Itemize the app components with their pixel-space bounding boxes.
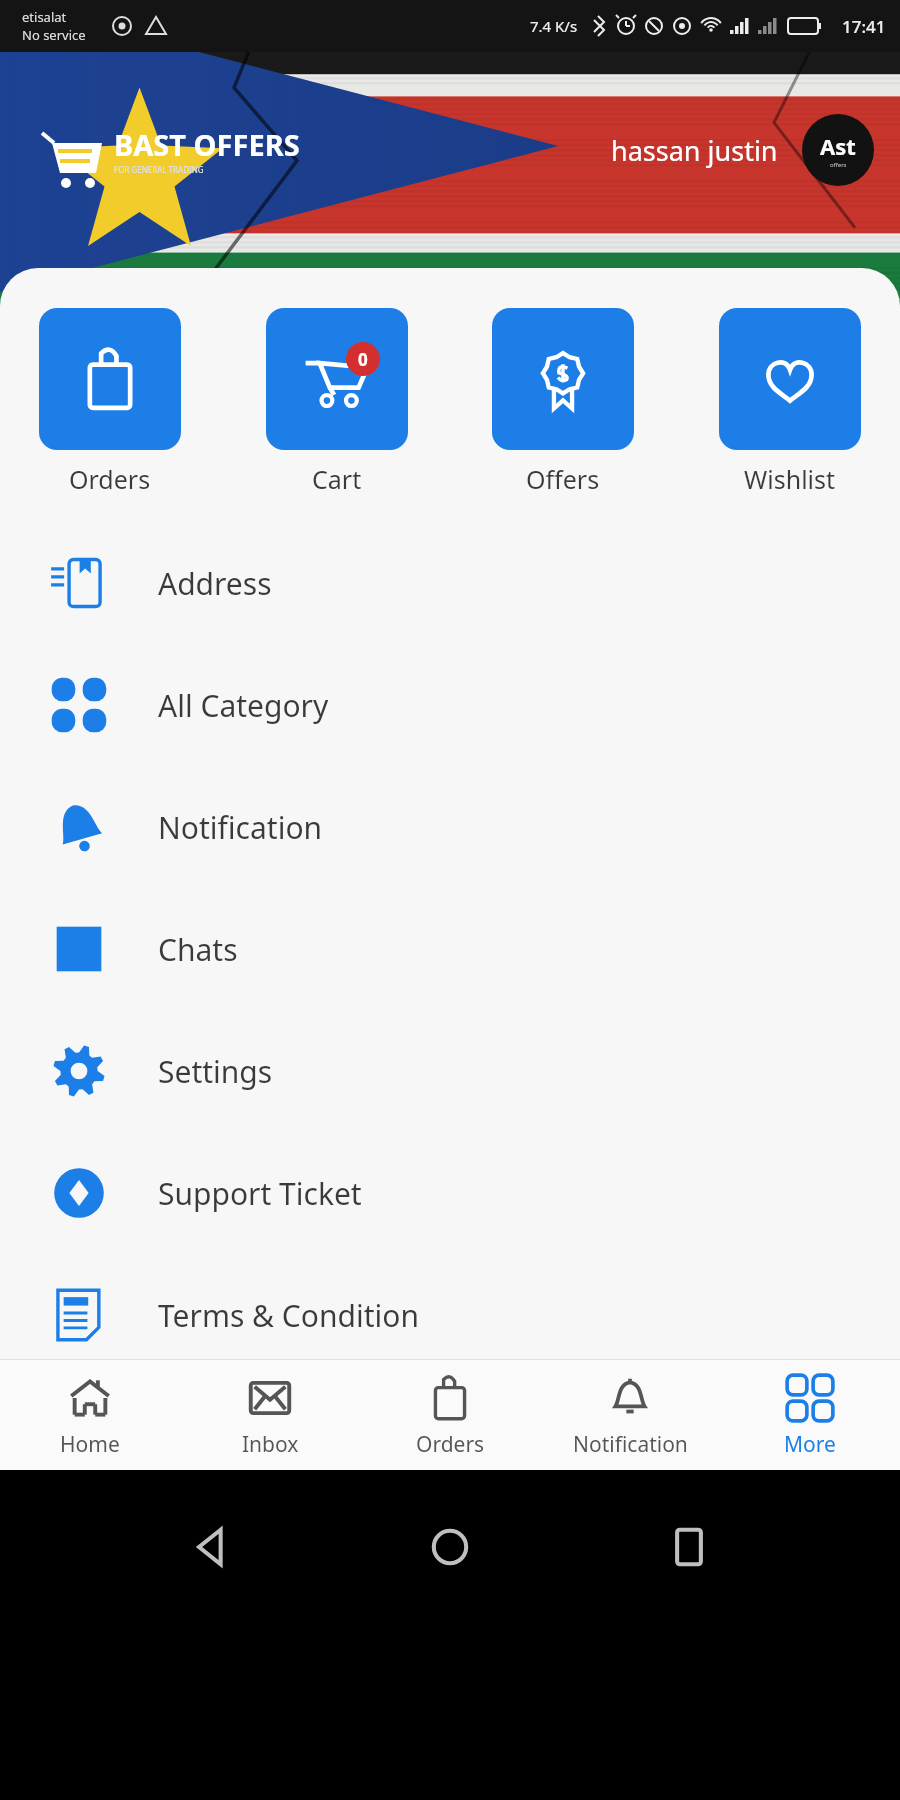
button[interactable]: Terms & Condition: [0, 1254, 900, 1376]
staticText: Orders: [416, 1430, 485, 1459]
staticText: BAST OFFERS: [114, 125, 300, 164]
button[interactable]: All Category: [0, 644, 900, 766]
staticText: Wishlist: [744, 462, 836, 496]
staticText: FOR GENERAL TRADING: [114, 164, 204, 175]
staticText: No service: [22, 26, 86, 44]
staticText: hassan justin: [611, 132, 778, 169]
staticText: 7.4 K/s: [530, 16, 578, 36]
staticText: All Category: [158, 685, 329, 726]
button[interactable]: Wishlist: [718, 308, 862, 496]
button[interactable]: Notification: [0, 766, 900, 888]
staticText: Ast: [820, 131, 856, 161]
staticText: Cart: [312, 462, 362, 496]
button[interactable]: Support Ticket: [0, 1132, 900, 1254]
staticText: Chats: [158, 929, 238, 970]
staticText: 17:41: [842, 15, 886, 38]
other: Recents: [662, 1520, 716, 1574]
staticText: Offers: [526, 462, 600, 496]
button[interactable]: Offers: [491, 308, 635, 496]
staticText: Support Ticket: [158, 1173, 362, 1214]
button[interactable]: Chats: [0, 888, 900, 1010]
button[interactable]: Address: [0, 522, 900, 644]
staticText: Inbox: [242, 1430, 299, 1459]
button[interactable]: Home: [0, 1360, 180, 1470]
staticText: Notification: [158, 807, 323, 848]
staticText: offers: [830, 161, 847, 169]
staticText: Terms & Condition: [158, 1295, 419, 1336]
other: Home: [423, 1520, 477, 1574]
staticText: Address: [158, 563, 272, 604]
other: Back: [185, 1520, 239, 1574]
staticText: Settings: [158, 1051, 273, 1092]
button[interactable]: Orders: [360, 1360, 540, 1470]
button[interactable]: 0: [265, 308, 409, 496]
staticText: Notification: [573, 1430, 688, 1459]
staticText: etisalat: [22, 8, 67, 26]
button[interactable]: Settings: [0, 1010, 900, 1132]
staticText: More: [784, 1430, 836, 1459]
button[interactable]: Notification: [540, 1360, 720, 1470]
button[interactable]: Inbox: [180, 1360, 360, 1470]
staticText: 0: [358, 348, 368, 371]
staticText: Orders: [69, 462, 151, 496]
button[interactable]: Profile: [802, 114, 874, 186]
staticText: Home: [60, 1430, 120, 1459]
button[interactable]: More: [720, 1360, 900, 1470]
button[interactable]: Orders: [38, 308, 182, 496]
